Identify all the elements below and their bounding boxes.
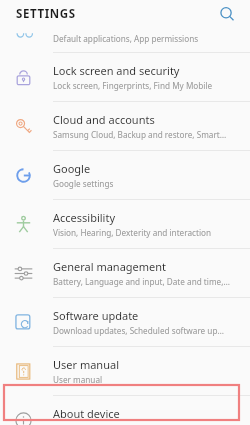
button[interactable]: Cloud and accounts [0, 102, 250, 150]
button[interactable]: Lock screen and security [0, 53, 250, 101]
staticText: Vision, Hearing, Dexterity and interacti… [53, 227, 212, 238]
staticText: Samsung Cloud, Backup and restore, Smart… [53, 129, 227, 140]
staticText: User manual [53, 357, 119, 372]
staticText: Battery, Language and input, Date and ti… [53, 276, 230, 287]
button[interactable]: Default applications, App permissions [0, 28, 250, 52]
button[interactable]: Software update [0, 298, 250, 346]
button[interactable]: General management [0, 249, 250, 297]
staticText: General management [53, 259, 167, 274]
staticText: Lock screen, Fingerprints, Find My Mobil… [53, 80, 213, 91]
staticText: About device [53, 406, 120, 421]
staticText: Software update [53, 308, 139, 323]
button[interactable]: Google [0, 151, 250, 199]
button[interactable]: User manual [0, 347, 250, 395]
staticText: Cloud and accounts [53, 112, 155, 127]
staticText: Google settings [53, 178, 114, 189]
staticText: Download updates, Scheduled software up… [53, 325, 224, 336]
button[interactable]: Search [214, 1, 240, 27]
staticText: Lock screen and security [53, 63, 180, 78]
staticText: Google [53, 161, 91, 176]
staticText: Accessibility [53, 210, 116, 225]
button[interactable]: About device [0, 396, 250, 425]
button[interactable]: Accessibility [0, 200, 250, 248]
staticText: SETTINGS [16, 6, 76, 22]
staticText: Default applications, App permissions [53, 33, 199, 44]
staticText: User manual [53, 374, 103, 385]
